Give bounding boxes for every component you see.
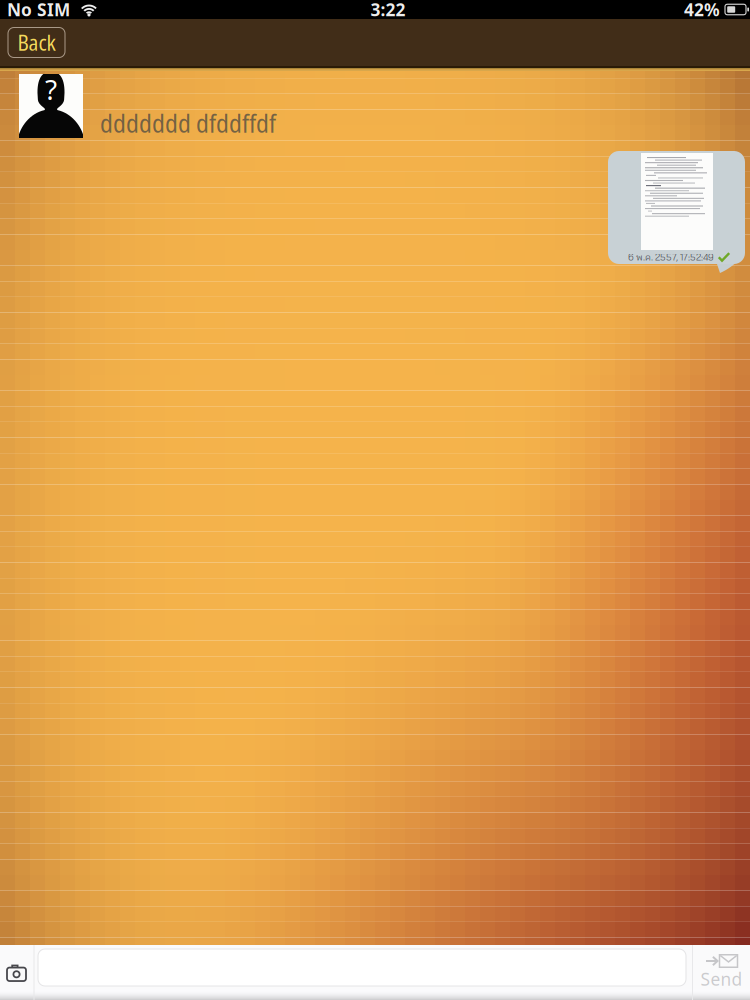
staticText: ddddddd dfddffdf	[100, 106, 276, 140]
button[interactable]: Send	[693, 945, 750, 1000]
button[interactable]: Take photo	[0, 945, 33, 1000]
staticText: 6 พ.ค. 2557, 17:52:49	[628, 251, 714, 263]
button[interactable]: Back	[8, 27, 65, 57]
staticText: Back	[17, 28, 55, 57]
staticText: 3:22	[370, 0, 405, 21]
staticText: ?	[45, 70, 57, 108]
staticText: No SIM	[7, 0, 70, 21]
staticText: 42%	[684, 0, 720, 21]
staticText: Send	[700, 967, 742, 990]
